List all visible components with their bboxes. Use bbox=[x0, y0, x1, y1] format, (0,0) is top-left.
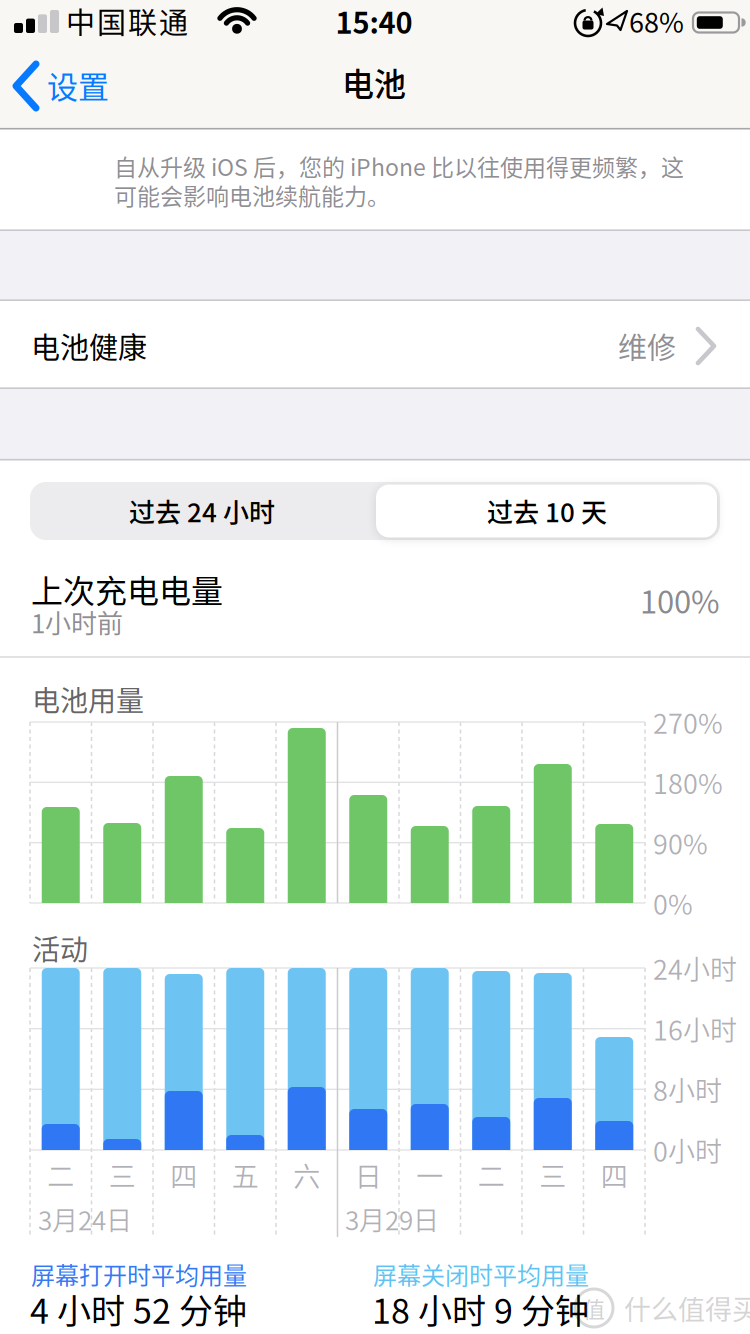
staticText: 8小时 bbox=[653, 1070, 722, 1109]
staticText: 二 bbox=[47, 1155, 74, 1195]
staticText: 18 小时 9 分钟 bbox=[372, 1284, 589, 1334]
staticText: 68% bbox=[629, 1, 684, 41]
staticText: 24小时 bbox=[653, 948, 737, 988]
staticText: 四 bbox=[601, 1155, 628, 1195]
staticText: 屏幕打开时平均用量 bbox=[31, 1257, 247, 1291]
staticText: 什么值得买 bbox=[624, 1288, 750, 1328]
staticText: 一 bbox=[416, 1155, 443, 1195]
staticText: 值 bbox=[583, 1292, 605, 1324]
staticText: 维修 bbox=[618, 325, 676, 367]
staticText: 可能会影响电池续航能力。 bbox=[114, 178, 390, 212]
staticText: 自从升级 iOS 后，您的 iPhone 比以往使用得更频繁，这 bbox=[114, 149, 684, 183]
staticText: 四 bbox=[170, 1155, 197, 1195]
staticText: 0% bbox=[653, 883, 693, 923]
staticText: 屏幕关闭时平均用量 bbox=[373, 1257, 589, 1291]
staticText: 三 bbox=[539, 1155, 566, 1195]
staticText: 设置 bbox=[47, 63, 109, 107]
staticText: 三 bbox=[109, 1155, 136, 1195]
staticText: 3月29日 bbox=[345, 1200, 439, 1238]
staticText: 15:40 bbox=[335, 0, 412, 42]
staticText: 0小时 bbox=[653, 1130, 722, 1170]
staticText: 日 bbox=[355, 1155, 382, 1195]
staticText: 270% bbox=[653, 702, 723, 742]
staticText: 二 bbox=[478, 1155, 505, 1195]
staticText: 六 bbox=[293, 1155, 320, 1195]
staticText: 电池 bbox=[342, 59, 406, 105]
staticText: 五 bbox=[232, 1155, 259, 1195]
staticText: 3月24日 bbox=[38, 1200, 132, 1238]
staticText: 180% bbox=[653, 763, 723, 802]
staticText: 4 小时 52 分钟 bbox=[30, 1284, 247, 1334]
staticText: 16小时 bbox=[653, 1009, 737, 1048]
staticText: 电池健康 bbox=[31, 325, 147, 367]
staticText: 90% bbox=[653, 823, 708, 862]
staticText: 活动 bbox=[32, 928, 88, 968]
staticText: 1小时前 bbox=[31, 603, 123, 641]
staticText: 电池用量 bbox=[32, 679, 144, 719]
staticText: 中 国 联 通 bbox=[66, 0, 188, 42]
staticText: 上次充电电量 bbox=[31, 566, 223, 612]
staticText: 100% bbox=[640, 578, 720, 622]
staticText: 过去 10 天 bbox=[487, 492, 607, 530]
staticText: 过去 24 小时 bbox=[129, 492, 275, 530]
